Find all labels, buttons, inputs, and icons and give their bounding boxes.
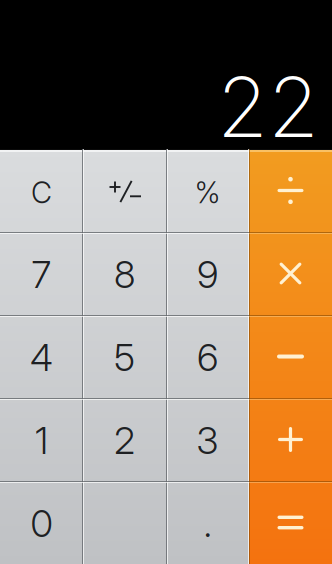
button[interactable]: Subtract: [249, 315, 332, 398]
button[interactable]: 0: [0, 481, 166, 564]
button[interactable]: Add: [249, 398, 332, 481]
button[interactable]: 3: [166, 398, 249, 481]
button[interactable]: Plus minus: [83, 149, 166, 232]
button[interactable]: 9: [166, 232, 249, 315]
button[interactable]: 6: [166, 315, 249, 398]
button[interactable]: Multiply: [249, 232, 332, 315]
staticText: 22: [217, 57, 319, 157]
staticText: 8: [114, 252, 135, 297]
staticText: %: [194, 175, 220, 210]
staticText: 3: [196, 418, 218, 463]
button[interactable]: C: [0, 149, 83, 232]
button[interactable]: .: [166, 481, 249, 564]
staticText: 7: [31, 252, 51, 297]
button[interactable]: Divide: [249, 149, 332, 232]
button[interactable]: %: [166, 149, 249, 232]
button[interactable]: 8: [83, 232, 166, 315]
staticText: 4: [30, 335, 53, 380]
staticText: 9: [197, 252, 218, 297]
staticText: 0: [30, 501, 52, 546]
staticText: 5: [114, 335, 135, 380]
button[interactable]: 7: [0, 232, 83, 315]
button[interactable]: 1: [0, 398, 83, 481]
staticText: .: [203, 501, 211, 546]
staticText: 2: [114, 418, 135, 463]
staticText: 6: [197, 335, 218, 380]
staticText: C: [31, 175, 52, 210]
staticText: 1: [35, 418, 48, 463]
button[interactable]: Equals: [249, 481, 332, 564]
button[interactable]: 5: [83, 315, 166, 398]
button[interactable]: 2: [83, 398, 166, 481]
button[interactable]: 4: [0, 315, 83, 398]
